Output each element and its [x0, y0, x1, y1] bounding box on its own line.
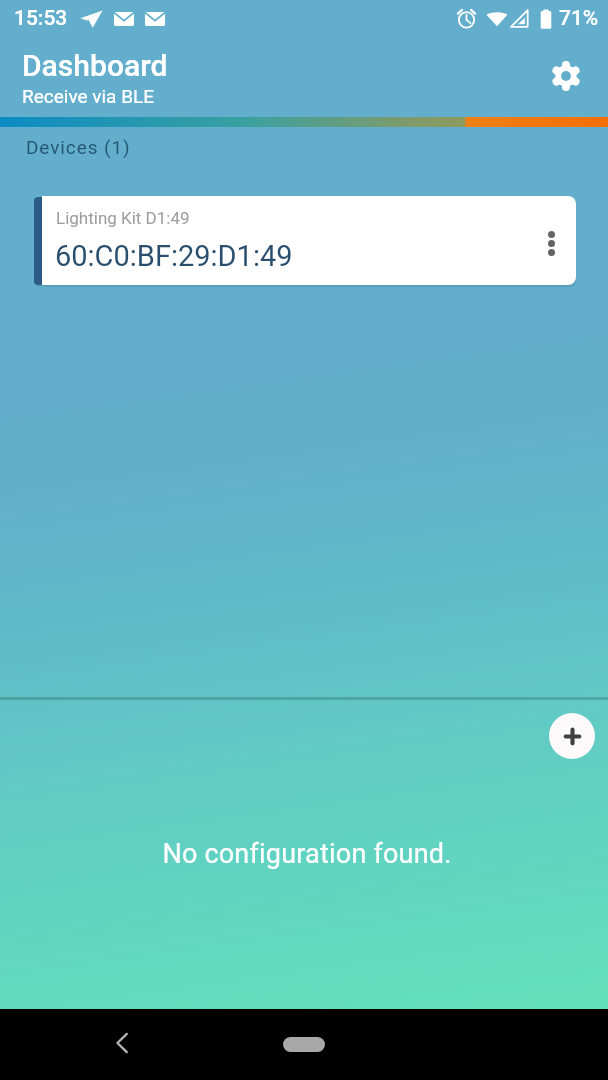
- staticText: Lighting Kit D1:49: [56, 208, 190, 228]
- staticText: 71%: [559, 6, 599, 31]
- staticText: Dashboard: [22, 48, 168, 83]
- staticText: Receive via BLE: [22, 85, 155, 107]
- staticText: No configuration found.: [3, 838, 608, 870]
- button[interactable]: Back: [101, 1022, 143, 1064]
- staticText: 60:C0:BF:29:D1:49: [55, 239, 293, 273]
- button[interactable]: Settings: [542, 52, 590, 100]
- button[interactable]: More options: [529, 221, 573, 265]
- button[interactable]: Add configuration: [549, 713, 595, 759]
- button[interactable]: Lighting Kit D1:49: [42, 196, 576, 285]
- button[interactable]: Home: [283, 1037, 325, 1052]
- staticText: Devices (1): [26, 136, 131, 158]
- staticText: 15:53: [14, 6, 68, 31]
